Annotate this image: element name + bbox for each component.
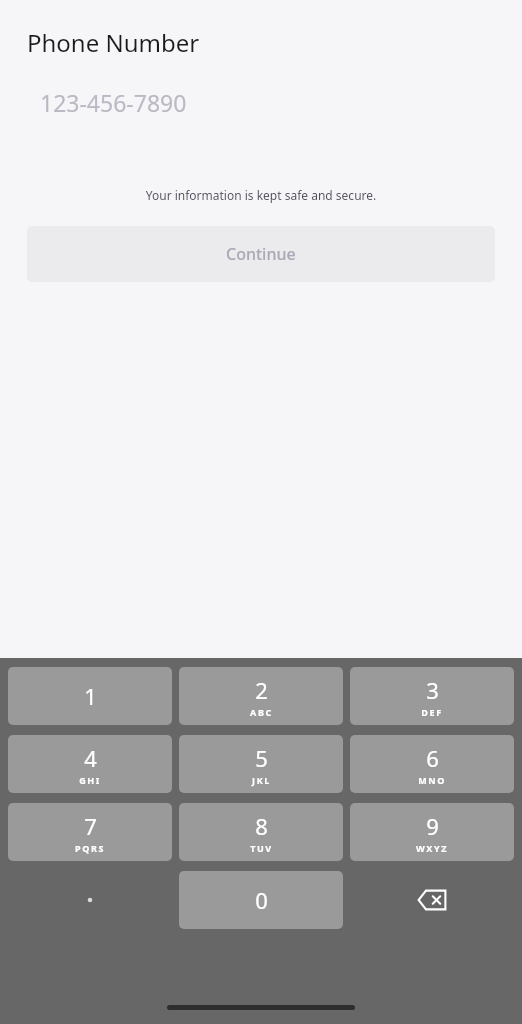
staticText: DEF — [421, 706, 443, 718]
staticText: JKL — [252, 774, 271, 786]
button[interactable]: 1 — [8, 667, 172, 725]
staticText: 2 — [255, 675, 268, 705]
button[interactable]: 6 — [350, 735, 514, 793]
staticText: PQRS — [75, 842, 105, 854]
staticText: 8 — [255, 811, 268, 841]
button[interactable]: Delete — [350, 871, 514, 929]
staticText: 7 — [84, 811, 97, 841]
staticText: ABC — [250, 706, 273, 718]
staticText: Phone Number — [27, 26, 200, 59]
button[interactable]: 0 — [179, 871, 343, 929]
staticText: WXYZ — [416, 842, 448, 854]
staticText: 0 — [255, 885, 268, 915]
staticText: TUV — [250, 842, 273, 854]
staticText: 1 — [84, 681, 97, 711]
staticText: 3 — [426, 675, 439, 705]
button[interactable]: 5 — [179, 735, 343, 793]
staticText: 6 — [426, 743, 439, 773]
button[interactable]: Period — [8, 871, 172, 929]
staticText: 5 — [255, 743, 268, 773]
button[interactable]: 8 — [179, 803, 343, 861]
button[interactable]: 2 — [179, 667, 343, 725]
button[interactable]: 4 — [8, 735, 172, 793]
staticText: 4 — [84, 743, 97, 773]
staticText: Continue — [226, 243, 296, 265]
button[interactable]: 3 — [350, 667, 514, 725]
button[interactable]: Continue — [27, 226, 495, 282]
staticText: MNO — [418, 774, 446, 786]
button[interactable]: 9 — [350, 803, 514, 861]
button[interactable]: 7 — [8, 803, 172, 861]
staticText: 9 — [426, 811, 439, 841]
staticText: GHI — [79, 774, 101, 786]
staticText: Your information is kept safe and secure… — [0, 187, 522, 203]
staticText: 123-456-7890 — [40, 87, 187, 118]
